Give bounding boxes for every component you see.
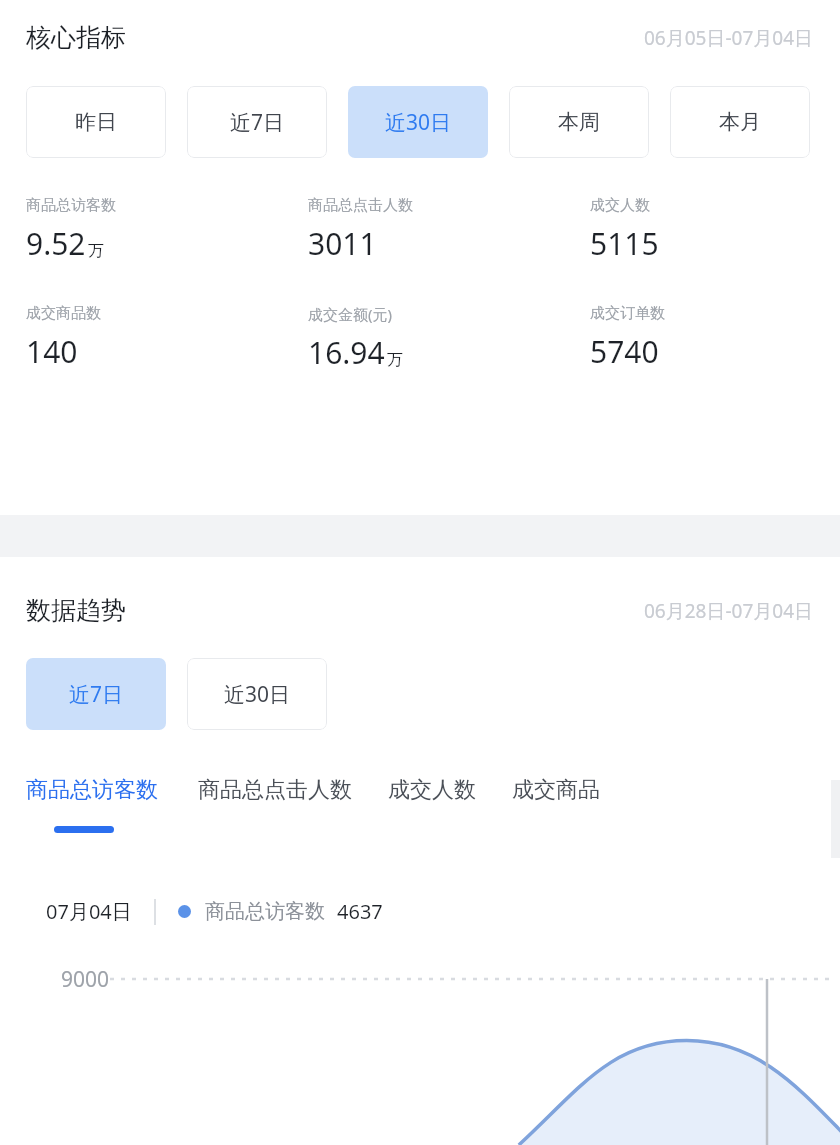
staticText: 近30日 [385, 108, 452, 137]
staticText: 商品总点击人数 [308, 196, 413, 215]
staticText: 数据趋势 [26, 595, 126, 626]
staticText: 9.52 [26, 223, 86, 264]
staticText: 成交商品数 [26, 304, 101, 323]
button[interactable]: 本周 [509, 86, 649, 158]
staticText: 本月 [719, 109, 761, 135]
staticText: 近7日 [69, 680, 124, 709]
staticText: 5740 [590, 331, 659, 372]
staticText: 3011 [308, 223, 377, 264]
button[interactable]: 成交人数 [388, 776, 476, 804]
staticText: 9000 [61, 965, 110, 994]
staticText: 16.94 [308, 332, 385, 373]
staticText: 万 [88, 241, 104, 261]
staticText: 成交商品 [512, 776, 600, 804]
staticText: 近7日 [230, 108, 285, 137]
button[interactable]: 成交商品 [512, 776, 600, 804]
button[interactable]: 商品总访客数 [26, 776, 158, 833]
button[interactable]: 昨日 [26, 86, 166, 158]
staticText: 成交人数 [388, 776, 476, 804]
staticText: 06月28日-07月04日 [644, 598, 814, 624]
staticText: 商品总点击人数 [198, 776, 352, 804]
button[interactable]: 本月 [670, 86, 810, 158]
staticText: 昨日 [75, 109, 117, 135]
staticText: 4637 [337, 898, 383, 925]
button[interactable]: 商品总点击人数 [198, 776, 352, 804]
staticText: 商品总访客数 [26, 776, 158, 804]
staticText: 万 [387, 350, 403, 370]
staticText: 近30日 [224, 680, 291, 709]
button[interactable]: 近7日 [187, 86, 327, 158]
staticText: 商品总访客数 [205, 899, 325, 924]
staticText: 成交金额(元) [308, 304, 393, 324]
button[interactable]: 近7日 [26, 658, 166, 730]
button[interactable]: 近30日 [187, 658, 327, 730]
staticText: 成交订单数 [590, 304, 665, 323]
staticText: 5115 [590, 223, 659, 264]
staticText: 核心指标 [26, 22, 126, 53]
staticText: 06月05日-07月04日 [644, 25, 814, 51]
staticText: 07月04日 [46, 898, 132, 925]
staticText: 商品总访客数 [26, 196, 116, 215]
staticText: 140 [26, 331, 78, 372]
staticText: 成交人数 [590, 196, 650, 215]
staticText: 本周 [558, 109, 600, 135]
button[interactable]: 近30日 [348, 86, 488, 158]
